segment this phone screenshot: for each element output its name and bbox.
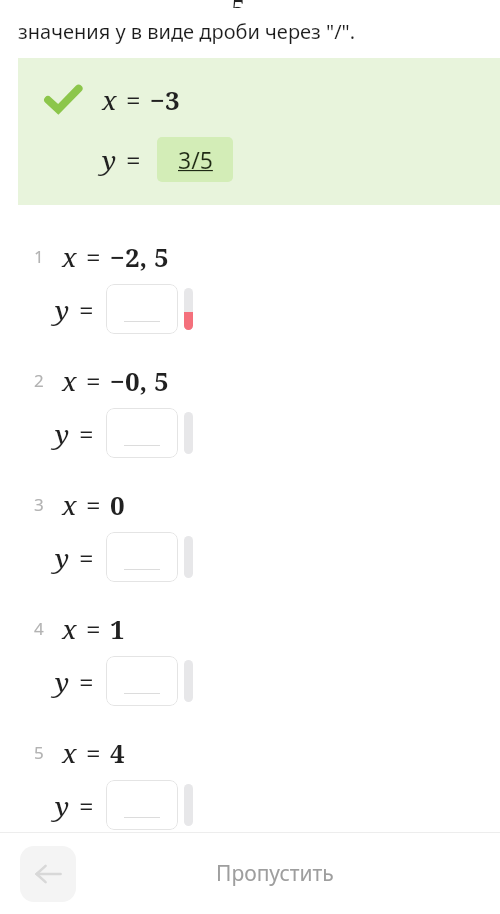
staticText: = bbox=[79, 788, 94, 823]
staticText: 5 bbox=[34, 741, 44, 764]
staticText: x bbox=[62, 735, 77, 770]
staticText: 1 bbox=[34, 245, 44, 268]
staticText: значения y в виде дроби через "/". bbox=[18, 18, 356, 45]
staticText: 4 bbox=[110, 735, 125, 770]
staticText: = bbox=[79, 416, 94, 451]
staticText: = bbox=[126, 142, 141, 177]
button[interactable]: Answer input bbox=[106, 780, 178, 830]
staticText: = bbox=[79, 292, 94, 327]
staticText: 3 bbox=[34, 493, 44, 516]
staticText: −3 bbox=[150, 82, 180, 117]
staticText: −2, 5 bbox=[110, 239, 169, 274]
staticText: = bbox=[126, 82, 141, 117]
staticText: x bbox=[62, 239, 77, 274]
staticText: y bbox=[55, 664, 70, 699]
button[interactable]: Answer input bbox=[106, 656, 178, 706]
staticText: 3/5 bbox=[178, 144, 213, 175]
button[interactable]: Answer input bbox=[106, 532, 178, 582]
staticText: 2 bbox=[34, 369, 44, 392]
button[interactable]: Пропустить bbox=[202, 851, 348, 896]
staticText: y bbox=[55, 292, 70, 327]
staticText: x bbox=[102, 82, 117, 117]
staticText: = bbox=[79, 664, 94, 699]
staticText: 0 bbox=[110, 487, 125, 522]
staticText: Пропустить bbox=[216, 859, 334, 888]
staticText: 1 bbox=[110, 611, 125, 646]
button[interactable]: Answer input bbox=[106, 408, 178, 458]
staticText: y bbox=[102, 142, 117, 177]
staticText: y bbox=[55, 540, 70, 575]
button[interactable]: Answer input bbox=[106, 284, 178, 334]
staticText: x bbox=[62, 363, 77, 398]
staticText: = bbox=[86, 735, 101, 770]
staticText: y bbox=[55, 788, 70, 823]
staticText: −0, 5 bbox=[110, 363, 169, 398]
staticText: y bbox=[55, 416, 70, 451]
staticText: x bbox=[62, 487, 77, 522]
staticText: = bbox=[86, 239, 101, 274]
staticText: 4 bbox=[34, 617, 44, 640]
button[interactable]: 3/5 bbox=[157, 137, 233, 182]
staticText: = bbox=[86, 363, 101, 398]
staticText: 5 bbox=[231, 0, 246, 8]
staticText: = bbox=[86, 611, 101, 646]
staticText: = bbox=[79, 540, 94, 575]
staticText: x bbox=[62, 611, 77, 646]
button[interactable]: Back bbox=[20, 846, 76, 902]
staticText: = bbox=[86, 487, 101, 522]
